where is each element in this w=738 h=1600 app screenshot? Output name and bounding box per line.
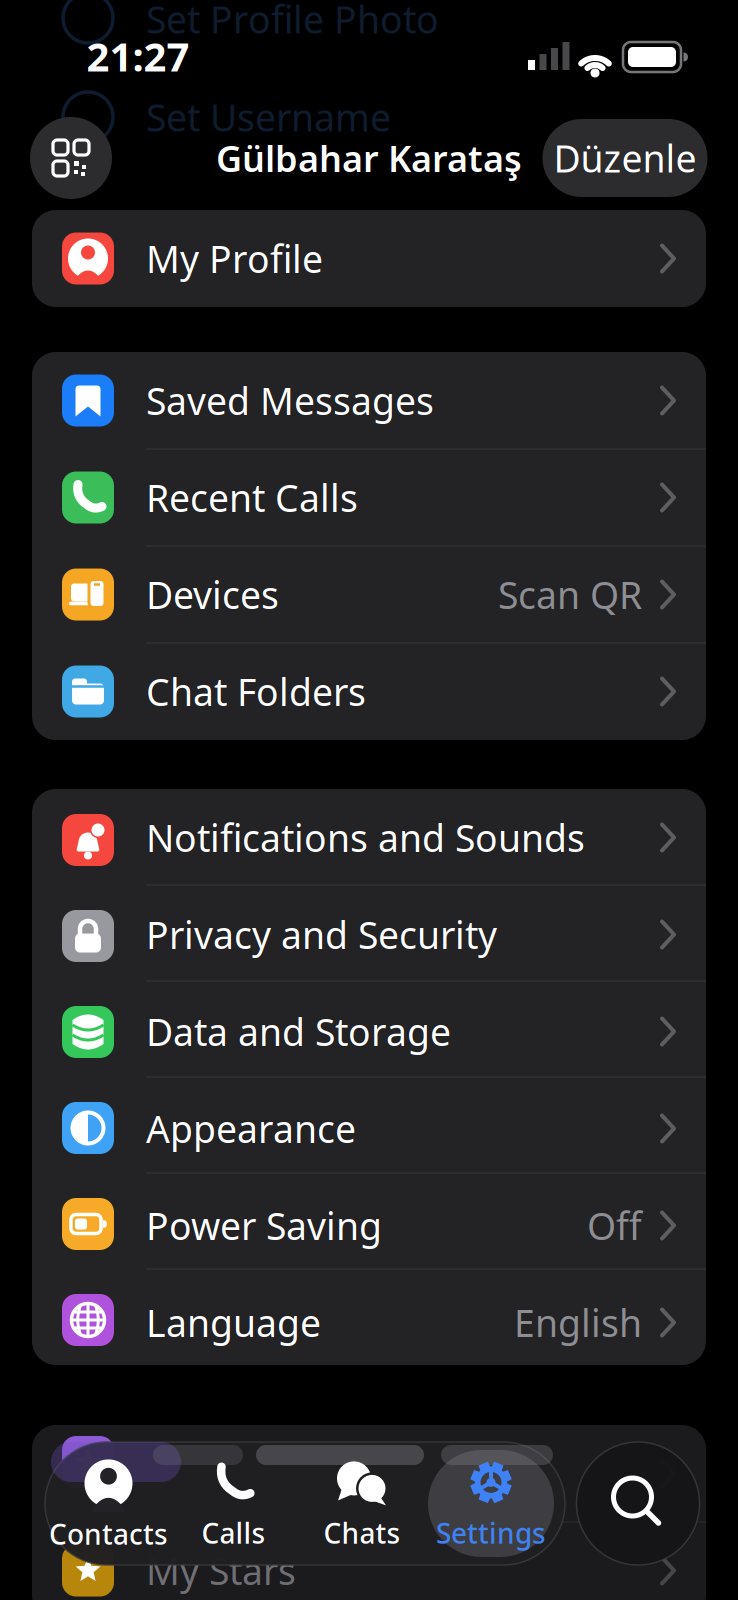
button[interactable]: Settings [421,1448,561,1564]
button[interactable]: Data and Storage [32,983,706,1080]
staticText: Devices [146,570,279,619]
button[interactable]: Power Saving [32,1177,706,1274]
button[interactable]: My Profile [32,210,706,307]
button[interactable]: Scan QR Code [30,117,112,199]
staticText: Calls [201,1514,265,1552]
button[interactable]: My Stars [32,1522,706,1600]
button[interactable]: Telegram Premium [32,1425,706,1522]
button[interactable]: Recent Calls [32,449,706,546]
staticText: Recent Calls [146,473,358,522]
button[interactable]: Chat Folders [32,643,706,740]
button[interactable]: Language [32,1274,706,1371]
staticText: Chats [323,1514,400,1552]
staticText: Set Profile Photo [146,0,439,44]
button[interactable]: Düzenle [542,119,707,197]
staticText: Settings [436,1514,546,1552]
button[interactable]: Saved Messages [32,352,706,449]
button[interactable]: Privacy and Security [32,886,706,983]
staticText [146,1449,156,1498]
staticText: Scan QR [498,570,642,619]
button[interactable]: Chats [292,1448,432,1564]
staticText: Power Saving [146,1201,382,1250]
button[interactable]: Contacts [38,1448,178,1564]
staticText: Language [146,1298,321,1347]
staticText: Saved Messages [146,376,434,425]
staticText: Privacy and Security [146,910,497,959]
staticText: Appearance [146,1104,356,1153]
staticText: 21:27 [86,29,189,82]
staticText: Chat Folders [146,667,366,716]
button[interactable]: Devices [32,546,706,643]
staticText: Notifications and Sounds [146,813,585,862]
staticText: My Profile [146,234,323,283]
staticText: English [514,1298,642,1347]
staticText: Contacts [49,1515,168,1553]
staticText: Data and Storage [146,1007,451,1056]
staticText: Set Username [146,92,391,142]
button[interactable]: Appearance [32,1080,706,1177]
button[interactable]: Search [576,1442,699,1565]
button[interactable]: Notifications and Sounds [32,789,706,886]
staticText: Düzenle [553,133,696,183]
staticText: Gülbahar Karataş [216,134,522,182]
staticText: My Stars [146,1546,296,1595]
staticText: Off [587,1201,642,1250]
button[interactable]: Calls [163,1448,303,1564]
